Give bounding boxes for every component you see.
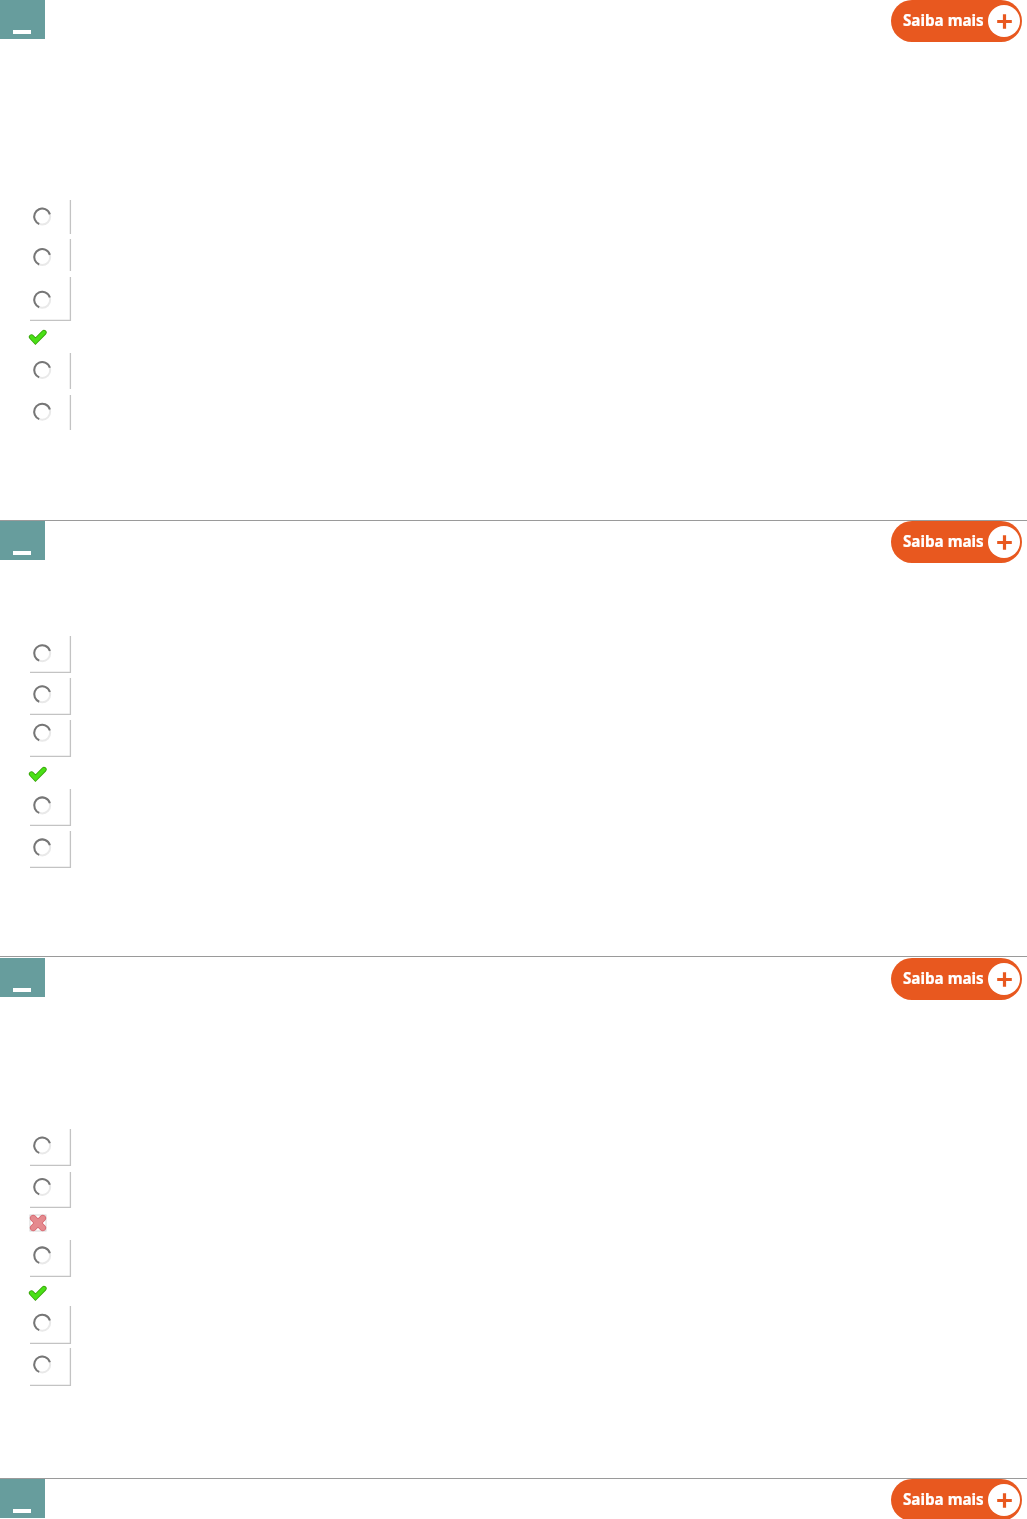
- button[interactable]: Saiba mais: [891, 521, 1022, 563]
- button[interactable]: Select option: [30, 353, 71, 389]
- button[interactable]: Select option: [30, 395, 71, 430]
- button[interactable]: Select option: [30, 277, 71, 321]
- button[interactable]: Menu: [0, 958, 45, 997]
- button[interactable]: Saiba mais: [891, 1479, 1022, 1519]
- button[interactable]: Menu: [0, 521, 45, 560]
- other: Incorrect: [30, 1215, 46, 1231]
- staticText: Saiba mais: [903, 531, 984, 552]
- other: Correct: [29, 1286, 46, 1300]
- staticText: Saiba mais: [903, 1489, 984, 1510]
- other: Correct: [29, 767, 46, 781]
- button[interactable]: Select option: [30, 1129, 71, 1166]
- button[interactable]: Select option: [30, 200, 71, 234]
- button[interactable]: Menu: [0, 1479, 45, 1518]
- button[interactable]: Select option: [30, 636, 71, 673]
- button[interactable]: Select option: [30, 789, 71, 826]
- button[interactable]: Select option: [30, 1306, 71, 1344]
- button[interactable]: Select option: [30, 720, 71, 757]
- button[interactable]: Select option: [30, 678, 71, 715]
- button[interactable]: Saiba mais: [891, 958, 1022, 1000]
- button[interactable]: Saiba mais: [891, 0, 1022, 42]
- other: Correct: [29, 330, 46, 344]
- button[interactable]: Select option: [30, 1172, 71, 1208]
- button[interactable]: Select option: [30, 239, 71, 271]
- button[interactable]: Menu: [0, 0, 45, 39]
- button[interactable]: Select option: [30, 831, 71, 868]
- button[interactable]: Select option: [30, 1240, 71, 1277]
- staticText: Saiba mais: [903, 968, 984, 989]
- staticText: Saiba mais: [903, 10, 984, 31]
- button[interactable]: Select option: [30, 1348, 71, 1386]
